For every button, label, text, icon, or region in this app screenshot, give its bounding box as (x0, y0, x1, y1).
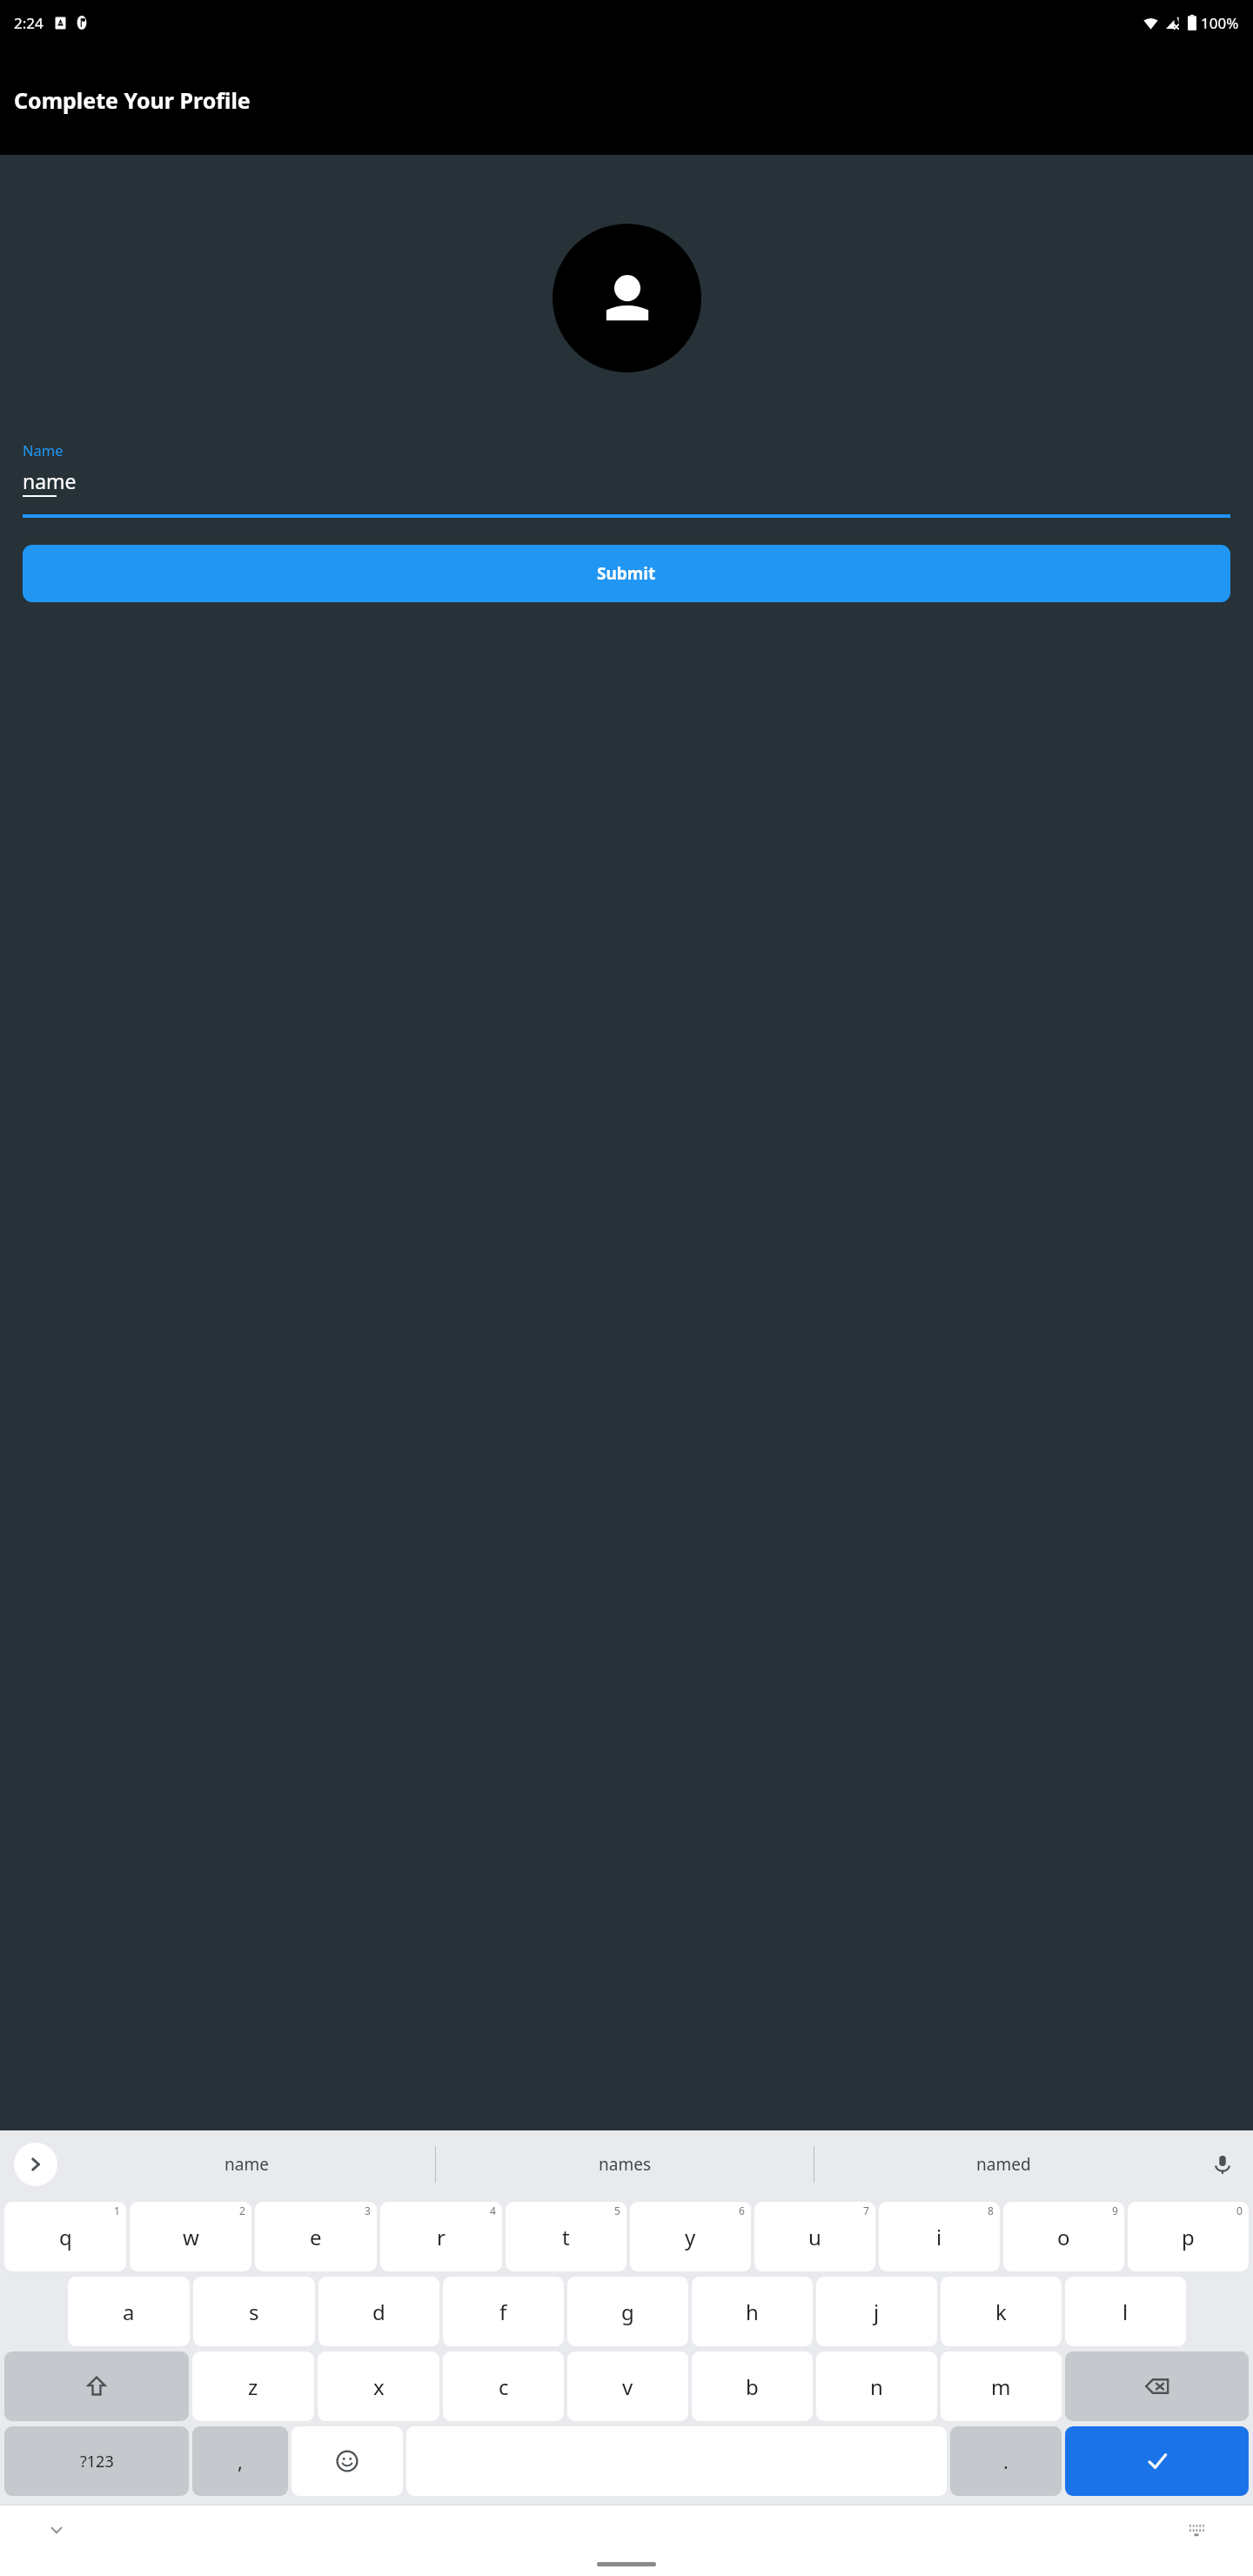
staticText: 2:24 (14, 13, 44, 33)
button[interactable]: s (193, 2277, 315, 2346)
staticText: 0 (1236, 2204, 1243, 2217)
button[interactable]: 4 (380, 2202, 502, 2271)
button[interactable]: l (1065, 2277, 1186, 2346)
button[interactable]: Voice input (1192, 2130, 1253, 2197)
button[interactable]: 0 (1128, 2202, 1249, 2271)
staticText: o (1057, 2223, 1070, 2251)
button[interactable]: 2 (130, 2202, 251, 2271)
button[interactable]: name (57, 2130, 435, 2197)
staticText: c (499, 2372, 509, 2401)
staticText: j (874, 2298, 880, 2326)
button[interactable]: 1 (4, 2202, 126, 2271)
button[interactable]: 3 (255, 2202, 377, 2271)
staticText: 5 (614, 2204, 620, 2217)
button[interactable]: Emoji (291, 2426, 403, 2496)
staticText: d (372, 2298, 385, 2326)
button[interactable]: Name (23, 440, 1230, 518)
staticText: x (373, 2372, 385, 2401)
staticText: , (238, 2448, 243, 2474)
staticText: p (1182, 2223, 1195, 2251)
staticText: 7 (863, 2204, 869, 2217)
button[interactable]: 5 (506, 2202, 626, 2271)
staticText: named (976, 2153, 1031, 2176)
staticText: s (249, 2298, 259, 2326)
staticText: r (437, 2223, 446, 2251)
staticText: w (183, 2223, 199, 2251)
staticText: i (936, 2223, 942, 2251)
button[interactable]: v (567, 2351, 688, 2421)
button[interactable]: k (941, 2277, 1062, 2346)
staticText: m (991, 2372, 1011, 2401)
staticText: . (1003, 2448, 1008, 2474)
button[interactable]: Enter (1065, 2426, 1249, 2496)
button[interactable]: 6 (630, 2202, 751, 2271)
button[interactable]: a (68, 2277, 190, 2346)
button[interactable]: b (692, 2351, 813, 2421)
staticText: y (685, 2223, 696, 2251)
staticText: l (1122, 2298, 1129, 2326)
button[interactable]: 9 (1003, 2202, 1124, 2271)
staticText: Submit (597, 562, 656, 585)
staticText: 9 (1112, 2204, 1118, 2217)
button[interactable]: j (816, 2277, 937, 2346)
button[interactable]: g (567, 2277, 688, 2346)
staticText: name (224, 2153, 269, 2176)
staticText: Complete Your Profile (14, 85, 251, 115)
button[interactable]: . (950, 2426, 1062, 2496)
staticText: Name (23, 440, 64, 460)
button[interactable]: 8 (879, 2202, 1000, 2271)
staticText: 3 (365, 2204, 371, 2217)
button[interactable]: , (192, 2426, 288, 2496)
staticText: e (310, 2223, 322, 2251)
button[interactable]: n (816, 2351, 937, 2421)
staticText: 100% (1201, 13, 1239, 33)
staticText: 6 (739, 2204, 745, 2217)
staticText: v (622, 2372, 633, 2401)
staticText: names (599, 2153, 651, 2176)
button[interactable]: ?123 (4, 2426, 189, 2496)
button[interactable]: h (692, 2277, 813, 2346)
staticText: b (746, 2372, 759, 2401)
button[interactable]: Shift (4, 2351, 189, 2421)
staticText: q (59, 2223, 72, 2251)
staticText: 2 (239, 2204, 245, 2217)
staticText: h (746, 2298, 759, 2326)
staticText: ?123 (80, 2451, 114, 2472)
button[interactable]: z (192, 2351, 314, 2421)
button[interactable]: More suggestions (14, 2143, 57, 2186)
staticText: 1 (114, 2204, 120, 2217)
button[interactable]: Hide keyboard (42, 2515, 71, 2545)
button[interactable]: named (814, 2130, 1192, 2197)
button[interactable]: 7 (754, 2202, 875, 2271)
staticText: u (808, 2223, 821, 2251)
button[interactable]: c (443, 2351, 564, 2421)
staticText: name (23, 467, 77, 494)
staticText: g (621, 2298, 634, 2326)
staticText: 8 (988, 2204, 994, 2217)
staticText: a (123, 2298, 135, 2326)
button[interactable]: names (436, 2130, 814, 2197)
button[interactable]: m (941, 2351, 1062, 2421)
button[interactable]: d (318, 2277, 439, 2346)
staticText: k (995, 2298, 1007, 2326)
staticText: n (870, 2372, 883, 2401)
button[interactable]: f (443, 2277, 564, 2346)
staticText: 4 (490, 2204, 496, 2217)
button[interactable]: Change profile photo (553, 224, 701, 372)
button[interactable]: Submit (23, 545, 1230, 602)
staticText: z (248, 2372, 258, 2401)
button[interactable]: x (318, 2351, 439, 2421)
button[interactable]: Backspace (1065, 2351, 1249, 2421)
staticText: t (562, 2223, 570, 2251)
staticText: f (499, 2298, 507, 2326)
button[interactable]: Switch keyboard (1182, 2515, 1211, 2545)
